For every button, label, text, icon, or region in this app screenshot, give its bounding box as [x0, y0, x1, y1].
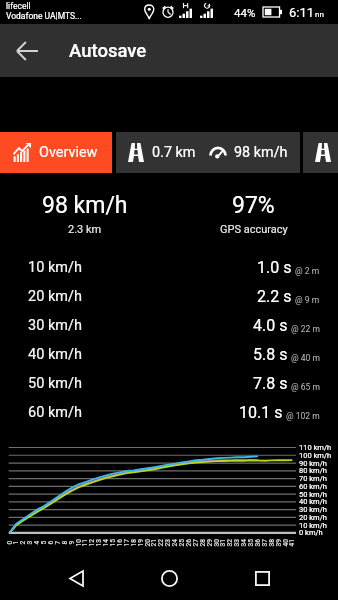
button[interactable]: Overview: [0, 132, 112, 173]
staticText: @ 102 m: [286, 411, 320, 421]
staticText: GPS accuracy: [220, 223, 288, 236]
button[interactable]: 10 km/h: [0, 253, 338, 282]
staticText: 98 km/h: [42, 192, 128, 219]
staticText: @ 2 m: [295, 266, 320, 276]
staticText: @ 22 m: [291, 324, 320, 334]
staticText: 7.8 s: [253, 374, 288, 393]
button[interactable]: Back: [48, 557, 105, 599]
staticText: 40 km/h: [28, 346, 82, 363]
staticText: 10 km/h: [28, 259, 82, 276]
staticText: 30 km/h: [28, 317, 82, 334]
staticText: @ 40 m: [291, 353, 320, 363]
staticText: @ 65 m: [291, 382, 320, 392]
staticText: 60 km/h: [28, 404, 82, 421]
button[interactable]: 30 km/h: [0, 311, 338, 340]
button[interactable]: 50 km/h: [0, 369, 338, 398]
staticText: lifecell: [6, 1, 31, 11]
staticText: 10.1 s: [239, 403, 283, 422]
button[interactable]: Home: [141, 557, 198, 599]
staticText: 1.0 s: [257, 258, 292, 277]
staticText: Autosave: [69, 40, 147, 62]
button[interactable]: 60 km/h: [0, 398, 338, 427]
staticText: 4.0 s: [253, 316, 288, 335]
button[interactable]: 40 km/h: [0, 340, 338, 369]
staticText: 98 km/h: [234, 144, 288, 161]
button[interactable]: 20 km/h: [0, 282, 338, 311]
staticText: 50 km/h: [28, 375, 82, 392]
staticText: Vodafone UA|MTS...: [6, 11, 82, 21]
staticText: 97%: [232, 192, 275, 219]
button[interactable]: Back: [0, 24, 53, 77]
staticText: 20 km/h: [28, 288, 82, 305]
button[interactable]: Recent apps: [234, 557, 291, 599]
button[interactable]: 0.7 km: [116, 132, 300, 173]
staticText: nn: [315, 10, 324, 19]
staticText: 0.7 km: [152, 144, 196, 161]
staticText: 2.2 s: [257, 287, 292, 306]
staticText: @ 9 m: [295, 295, 320, 305]
staticText: 2.3 km: [68, 223, 102, 236]
staticText: 44%: [234, 6, 256, 19]
staticText: Overview: [39, 144, 98, 161]
button[interactable]: [303, 132, 338, 173]
staticText: 6:11: [289, 5, 315, 20]
staticText: 5.8 s: [253, 345, 288, 364]
